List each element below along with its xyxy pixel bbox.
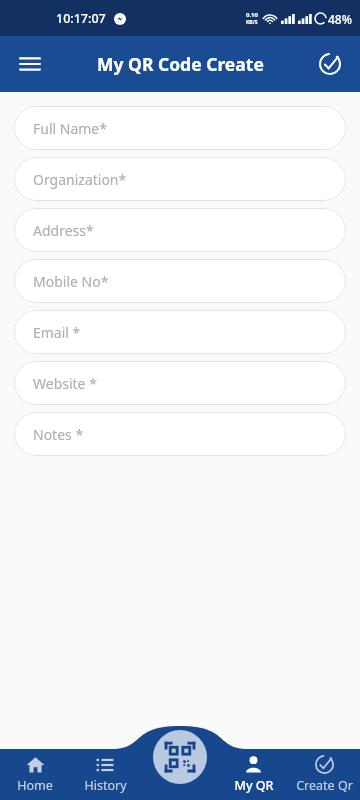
button[interactable]: History [70, 749, 140, 800]
staticText: KB/S [246, 19, 258, 26]
staticText: My QR [234, 777, 274, 794]
button[interactable]: Create Qr [289, 749, 360, 800]
button[interactable]: Address* [14, 208, 346, 252]
staticText: Home [17, 777, 53, 794]
staticText: 0.10 [246, 11, 258, 19]
staticText: My QR Code Create [97, 52, 264, 76]
staticText: Organization* [33, 170, 127, 189]
button[interactable]: Mobile No* [14, 259, 346, 303]
button[interactable]: Organization* [14, 157, 346, 201]
staticText: Address* [33, 221, 94, 240]
staticText: Notes * [33, 425, 84, 444]
staticText: 48% [328, 11, 352, 27]
button[interactable]: Full Name* [14, 106, 346, 150]
staticText: Website * [33, 374, 97, 393]
button[interactable]: Website * [14, 361, 346, 405]
staticText: Email * [33, 323, 81, 342]
staticText: Create Qr [296, 777, 353, 794]
staticText: Full Name* [33, 119, 107, 138]
button[interactable]: Scan QR code [153, 730, 207, 784]
button[interactable]: Save QR code [308, 42, 352, 86]
staticText: History [84, 777, 127, 794]
staticText: 10:17:07 [56, 10, 106, 27]
button[interactable]: My QR [218, 749, 289, 800]
button[interactable]: Email * [14, 310, 346, 354]
staticText: Mobile No* [33, 272, 109, 291]
button[interactable]: Open navigation menu [8, 42, 52, 86]
button[interactable]: Home [0, 749, 70, 800]
button[interactable]: Notes * [14, 412, 346, 456]
